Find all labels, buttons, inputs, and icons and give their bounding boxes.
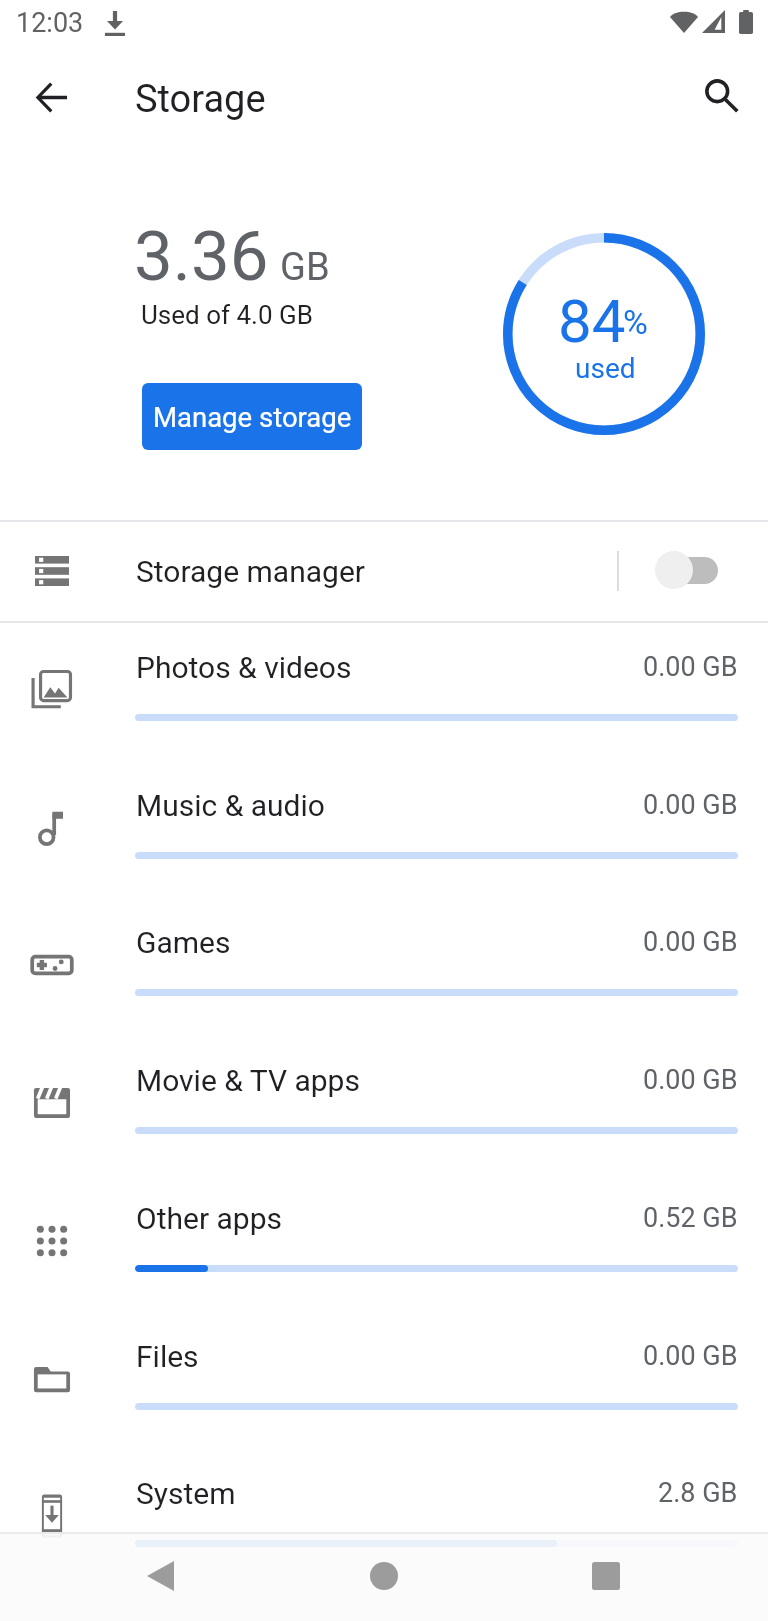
staticText: Other apps	[136, 1201, 282, 1236]
staticText: Files	[136, 1339, 199, 1374]
staticText: Storage	[135, 77, 266, 122]
button[interactable]: Back	[96, 1532, 224, 1621]
button[interactable]: Storage manager toggle	[640, 522, 768, 621]
button[interactable]: Music & audio	[0, 760, 768, 898]
button[interactable]: Storage manager	[0, 522, 768, 621]
staticText: Manage storage	[153, 401, 352, 433]
staticText: Games	[136, 925, 231, 960]
staticText: Storage manager	[136, 554, 365, 589]
button[interactable]: Other apps	[0, 1173, 768, 1311]
staticText: Movie & TV apps	[136, 1063, 360, 1098]
staticText: 0.00 GB	[643, 651, 738, 683]
staticText: Used of 4.0 GB	[141, 300, 313, 330]
staticText: 12:03	[16, 7, 84, 39]
button[interactable]: Recent apps	[542, 1532, 670, 1621]
staticText: 2.8 GB	[658, 1477, 738, 1509]
button[interactable]: Manage storage	[142, 383, 362, 450]
staticText: used	[575, 352, 636, 385]
staticText: 0.00 GB	[643, 789, 738, 821]
staticText: Music & audio	[136, 788, 325, 823]
staticText: %	[623, 302, 648, 342]
button[interactable]: Files	[0, 1311, 768, 1449]
button[interactable]: Games	[0, 897, 768, 1035]
staticText: 3.36	[134, 216, 269, 297]
staticText: System	[136, 1476, 236, 1511]
button[interactable]: Back	[4, 49, 100, 145]
staticText: 0.52 GB	[643, 1202, 738, 1234]
button[interactable]: Search	[674, 48, 768, 144]
button[interactable]: Photos & videos	[0, 622, 768, 760]
button[interactable]: Home	[320, 1532, 448, 1621]
staticText: 0.00 GB	[643, 926, 738, 958]
staticText: 0.00 GB	[643, 1340, 738, 1372]
staticText: Photos & videos	[136, 650, 352, 685]
staticText: 84	[558, 286, 626, 356]
button[interactable]: Movie & TV apps	[0, 1035, 768, 1173]
staticText: 0.00 GB	[643, 1064, 738, 1096]
staticText: GB	[280, 245, 330, 290]
button[interactable]: System	[0, 1448, 768, 1586]
